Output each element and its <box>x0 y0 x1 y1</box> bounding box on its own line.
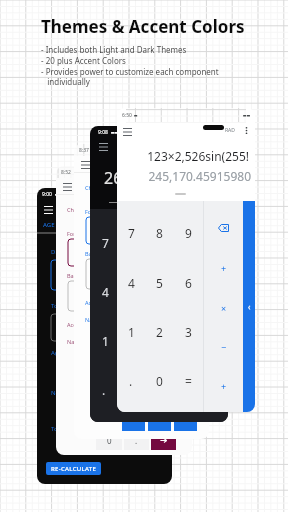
button[interactable] <box>174 421 197 431</box>
button[interactable]: 6 <box>174 258 203 307</box>
staticText: ‹ <box>248 301 251 312</box>
staticText: Themes & Accent Colors <box>41 15 245 38</box>
button[interactable]: . <box>124 430 149 450</box>
staticText: Background <box>85 250 117 257</box>
staticText: Accent Color <box>85 299 118 306</box>
staticText: ▬▬ <box>243 113 251 118</box>
staticText: 0 <box>156 373 163 389</box>
staticText: 0 <box>107 435 112 446</box>
staticText: Change Theme <box>85 184 125 191</box>
staticText: Navigation Bar <box>85 316 124 323</box>
staticText: - Provides power to customize each compo… <box>41 66 219 88</box>
staticText: 7 <box>102 235 109 251</box>
button[interactable]: × <box>204 288 243 327</box>
button[interactable]: = <box>174 356 203 405</box>
staticText: AGE CALCULATOR <box>43 221 94 229</box>
staticText: 8:37 <box>79 147 89 154</box>
button[interactable]: 5 <box>145 258 174 307</box>
staticText: ▬▬ <box>111 130 119 135</box>
button[interactable]: Expand panel <box>243 201 255 412</box>
staticText: Background <box>67 272 99 279</box>
button[interactable]: 8 <box>145 208 174 258</box>
staticText: Total <box>51 425 65 433</box>
staticText: Font Style <box>67 230 93 237</box>
button[interactable]: Menu <box>60 179 74 193</box>
staticText: 4 <box>102 284 109 300</box>
staticText: 1 <box>102 333 109 349</box>
staticText: Today's Date <box>51 302 87 310</box>
staticText: 6:50 <box>122 112 132 119</box>
staticText: + <box>221 262 227 274</box>
staticText: 8:52 <box>61 169 71 176</box>
staticText: 123×2,526sin(255! <box>117 148 249 164</box>
staticText: 6 <box>185 275 192 291</box>
staticText: 1 <box>128 324 135 340</box>
staticText: ▬ <box>134 113 138 118</box>
button[interactable]: 7 <box>117 208 145 258</box>
staticText: − <box>221 341 227 353</box>
staticText: 7 <box>128 225 135 241</box>
button[interactable]: 0 <box>145 356 174 405</box>
staticText: RE-CALCULATE <box>51 465 97 473</box>
staticText: - 20 plus Accent Colors <box>41 55 126 66</box>
button[interactable]: 2 <box>145 307 174 356</box>
button[interactable]: 4 <box>117 258 145 307</box>
staticText: 3 <box>185 324 192 340</box>
staticText: 2 <box>156 324 163 340</box>
staticText: Font Style <box>85 208 111 215</box>
button[interactable]: 3 <box>174 307 203 356</box>
button[interactable]: 0 <box>96 430 122 450</box>
button[interactable] <box>148 421 171 431</box>
staticText: . <box>129 373 133 389</box>
staticText: × <box>221 302 227 314</box>
staticText: - Includes both Light and Dark Themes <box>41 44 187 55</box>
staticText: + <box>221 380 227 392</box>
button[interactable]: − <box>204 327 243 366</box>
button[interactable]: + <box>204 248 243 288</box>
staticText: 9:00 <box>42 191 52 198</box>
staticText: = <box>185 373 192 389</box>
button[interactable]: Enter <box>151 430 176 450</box>
button[interactable]: Backspace <box>204 208 243 248</box>
button[interactable]: RE-CALCULATE <box>46 462 101 475</box>
staticText: . <box>135 435 138 446</box>
staticText: 245,170.45915980 <box>117 168 251 184</box>
staticText: 9:08 <box>98 129 108 136</box>
staticText: Next Birthday <box>51 389 90 397</box>
button[interactable]: Menu <box>41 202 55 216</box>
staticText: RAD <box>225 127 235 134</box>
staticText: 5 <box>156 275 163 291</box>
button[interactable]: Menu <box>96 139 110 153</box>
staticText: ▬▬ <box>55 192 63 197</box>
button[interactable]: . <box>117 356 145 405</box>
button[interactable]: More options <box>241 125 252 136</box>
staticText: Accent Color <box>67 321 100 328</box>
button[interactable]: Menu <box>78 157 92 171</box>
button[interactable]: 1 <box>117 307 145 356</box>
staticText: 9 <box>185 225 192 241</box>
staticText: Navigation Bar <box>67 338 106 345</box>
staticText: 8 <box>156 225 163 241</box>
button[interactable]: Menu <box>120 124 134 138</box>
staticText: Age <box>51 349 62 357</box>
staticText: Date of Birth <box>51 248 87 256</box>
staticText: . <box>102 382 106 398</box>
button[interactable] <box>122 421 145 431</box>
staticText: 26 <box>104 167 123 189</box>
staticText: 4 <box>128 275 135 291</box>
button[interactable]: + <box>204 366 243 405</box>
button[interactable]: 9 <box>174 208 203 258</box>
staticText: Change Theme <box>67 206 107 213</box>
